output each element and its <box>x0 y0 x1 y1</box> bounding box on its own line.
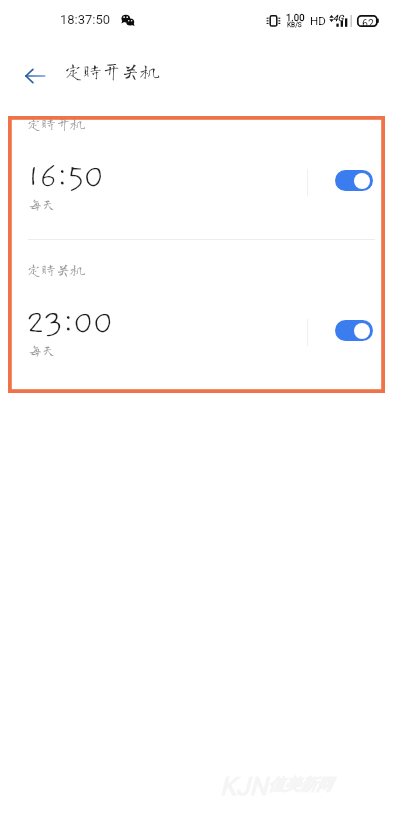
button[interactable]: 16:50 <box>26 159 104 196</box>
staticText: 定时开机 <box>27 116 85 131</box>
staticText: 4G <box>333 13 344 23</box>
button[interactable]: Toggle schedule <box>335 320 373 341</box>
staticText: 值美新网 <box>268 775 332 795</box>
staticText: HD <box>310 14 326 27</box>
staticText: 每天 <box>29 198 56 211</box>
staticText: 每天 <box>29 344 56 357</box>
button[interactable]: 23:00 <box>26 305 113 342</box>
staticText: KB/S <box>287 21 302 29</box>
staticText: 62 <box>362 17 374 29</box>
button[interactable]: Back <box>20 62 48 90</box>
staticText: 18:37:50 <box>60 12 111 27</box>
staticText: 定时关机 <box>27 262 85 277</box>
button[interactable]: Toggle schedule <box>335 170 373 191</box>
staticText: KJN <box>220 772 268 801</box>
staticText: 1.00 <box>286 12 305 23</box>
staticText: 定时开关机 <box>64 61 160 80</box>
